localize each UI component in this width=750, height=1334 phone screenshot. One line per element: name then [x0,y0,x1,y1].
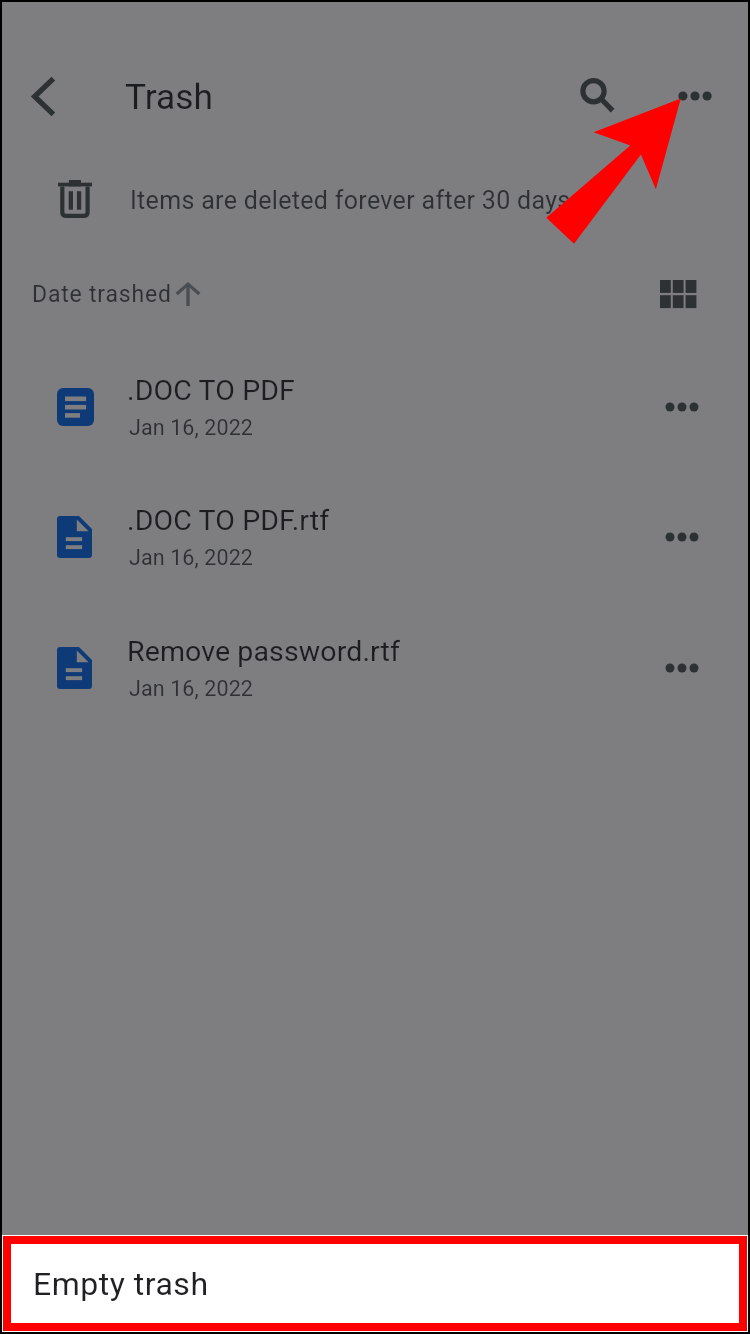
button[interactable]: More actions [652,517,712,557]
button[interactable]: More actions [652,648,712,688]
button[interactable]: Date trashed [32,273,201,315]
button[interactable]: Switch to grid view [648,266,708,322]
staticText: Trash [125,76,213,117]
staticText: .DOC TO PDF.rtf [127,504,330,537]
button[interactable]: Empty trash [2,1235,748,1332]
staticText: Empty trash [33,1265,209,1303]
button[interactable]: Navigate up [4,56,84,136]
staticText: Date trashed [32,281,172,308]
button[interactable]: Remove password.rtf [2,605,748,735]
staticText: Jan 16, 2022 [129,545,254,570]
staticText: Jan 16, 2022 [129,415,254,440]
button[interactable]: .DOC TO PDF.rtf [2,474,748,604]
button[interactable]: .DOC TO PDF [2,344,748,474]
staticText: .DOC TO PDF [127,374,295,407]
button[interactable]: More actions [652,387,712,427]
staticText: Remove password.rtf [127,635,400,668]
staticText: Jan 16, 2022 [129,676,254,701]
button[interactable]: Search [557,55,637,135]
button[interactable]: More options [660,61,730,131]
staticText: Items are deleted forever after 30 days [130,186,571,215]
